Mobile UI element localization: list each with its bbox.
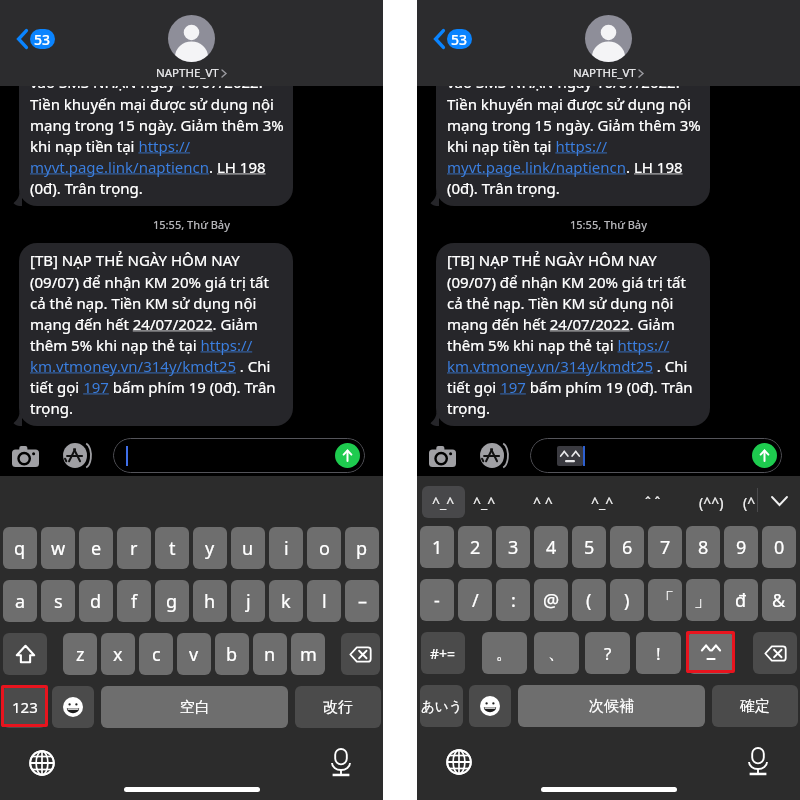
button[interactable]: Send [752, 443, 777, 468]
button[interactable]: – [345, 580, 379, 622]
button[interactable] [753, 632, 797, 674]
button[interactable]: 9 [724, 526, 758, 568]
button[interactable]: c [139, 633, 173, 675]
button[interactable]: h [193, 580, 227, 622]
button[interactable]: t [155, 527, 189, 569]
button[interactable]: i [269, 527, 303, 569]
staticText: j [246, 589, 251, 614]
button[interactable]: e [79, 527, 113, 569]
button[interactable]: ? [585, 632, 630, 674]
button[interactable]: s [41, 580, 75, 622]
button[interactable]: đ [724, 579, 758, 621]
button[interactable]: : [496, 579, 530, 621]
button[interactable]: Send [113, 438, 365, 473]
button[interactable]: f [117, 580, 151, 622]
button[interactable]: 空白 [101, 686, 288, 728]
button[interactable]: ( [572, 579, 606, 621]
button[interactable]: 8 [686, 526, 720, 568]
button[interactable]: Dictation [748, 747, 768, 776]
button[interactable]: ˆ ˆ [645, 486, 661, 518]
button[interactable]: v [177, 633, 211, 675]
button[interactable]: Send [335, 443, 360, 468]
button[interactable]: & [762, 579, 796, 621]
button[interactable]: b [215, 633, 249, 675]
button[interactable]: Camera [12, 444, 48, 468]
staticText: 1 [432, 535, 443, 560]
button[interactable] [3, 633, 47, 675]
button[interactable]: #+= [421, 632, 465, 674]
button[interactable]: [TB] NẠP THẺ NGÀY HÔM NAY (09/07) để nhậ… [19, 243, 293, 426]
button[interactable]: z [63, 633, 97, 675]
button[interactable]: d [79, 580, 113, 622]
button[interactable]: あいう [420, 685, 463, 727]
button[interactable]: ^ ^ [533, 486, 553, 518]
button[interactable]: vào SMS NHẬN ngày 10/07/2022. Tiền khuyế… [19, 86, 293, 206]
button[interactable]: NAPTHE_VT [156, 15, 227, 81]
staticText: 改行 [323, 698, 353, 717]
button[interactable]: p [345, 527, 379, 569]
button[interactable] [688, 632, 733, 674]
button[interactable]: 2 [458, 526, 492, 568]
button[interactable]: / [458, 579, 492, 621]
button[interactable]: w [41, 527, 75, 569]
button[interactable]: - [420, 579, 454, 621]
button[interactable]: [TB] NẠP THẺ NGÀY HÔM NAY (09/07) để nhậ… [436, 243, 710, 426]
button[interactable]: Change keyboard [29, 750, 55, 776]
staticText: ? [604, 642, 612, 665]
button[interactable]: 「 [648, 579, 682, 621]
button[interactable]: o [307, 527, 341, 569]
button[interactable]: Send [530, 438, 782, 473]
button[interactable]: 次候補 [518, 685, 705, 727]
button[interactable]: App Store [477, 442, 511, 468]
button[interactable] [469, 685, 511, 727]
button[interactable]: a [3, 580, 37, 622]
button[interactable]: (^ [743, 486, 756, 518]
button[interactable]: r [117, 527, 151, 569]
button[interactable]: ! [636, 632, 681, 674]
button[interactable]: g [155, 580, 189, 622]
button[interactable]: 0 [762, 526, 796, 568]
button[interactable]: ^_^ [422, 486, 465, 518]
button[interactable]: ^_^ [591, 486, 614, 518]
button[interactable]: 53 [432, 27, 474, 51]
button[interactable]: q [3, 527, 37, 569]
button[interactable]: 5 [572, 526, 606, 568]
button[interactable]: vào SMS NHẬN ngày 10/07/2022. Tiền khuyế… [436, 86, 710, 206]
button[interactable]: j [231, 580, 265, 622]
button[interactable]: k [269, 580, 303, 622]
staticText: 「 [656, 589, 674, 612]
button[interactable]: ^_^ [473, 486, 496, 518]
button[interactable]: Change keyboard [446, 749, 472, 775]
button[interactable]: m [291, 633, 325, 675]
button[interactable]: 53 [15, 27, 57, 51]
button[interactable]: 6 [610, 526, 644, 568]
button[interactable]: 。 [482, 632, 527, 674]
staticText: o [319, 536, 330, 561]
button[interactable]: (^^) [699, 486, 724, 518]
button[interactable]: y [193, 527, 227, 569]
button[interactable]: 改行 [295, 686, 381, 728]
button[interactable]: 1 [420, 526, 454, 568]
button[interactable] [52, 686, 94, 728]
button[interactable]: 、 [534, 632, 579, 674]
button[interactable]: x [101, 633, 135, 675]
button[interactable]: 4 [534, 526, 568, 568]
staticText: 7 [660, 535, 671, 560]
button[interactable]: u [231, 527, 265, 569]
button[interactable] [341, 633, 380, 675]
staticText: d [90, 589, 102, 614]
button[interactable]: 」 [686, 579, 720, 621]
button[interactable]: NAPTHE_VT [573, 15, 644, 81]
button[interactable]: ) [610, 579, 644, 621]
button[interactable]: 123 [3, 686, 46, 728]
button[interactable]: App Store [60, 442, 94, 468]
button[interactable]: n [253, 633, 287, 675]
button[interactable]: @ [534, 579, 568, 621]
button[interactable]: Camera [429, 444, 465, 468]
button[interactable]: 7 [648, 526, 682, 568]
button[interactable]: l [307, 580, 341, 622]
button[interactable]: Dictation [331, 748, 351, 777]
button[interactable]: 3 [496, 526, 530, 568]
button[interactable]: 確定 [712, 685, 798, 727]
button[interactable]: Collapse keyboard [765, 487, 793, 515]
